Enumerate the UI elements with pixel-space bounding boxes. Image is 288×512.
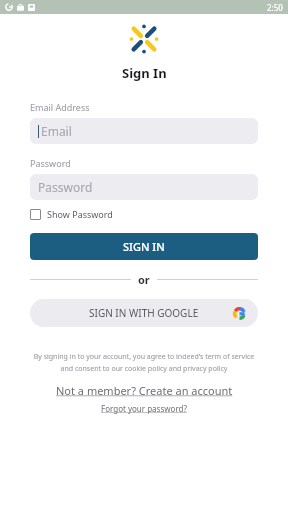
button[interactable]: Forgot your password?: [101, 403, 187, 414]
staticText: 2:50: [267, 2, 283, 13]
staticText: SIGN IN: [123, 239, 165, 254]
button[interactable]: Not a member? Create an account: [56, 383, 233, 398]
staticText: Sign In: [122, 64, 167, 82]
staticText: Email: [41, 123, 72, 139]
staticText: or: [138, 272, 150, 287]
button[interactable]: Show Password: [30, 206, 113, 222]
staticText: SIGN IN WITH GOOGLE: [89, 306, 199, 320]
staticText: Email Address: [30, 101, 90, 113]
button[interactable]: Email: [30, 118, 258, 144]
button[interactable]: SIGN IN WITH GOOGLE: [30, 299, 258, 327]
button[interactable]: SIGN IN: [30, 233, 258, 260]
staticText: Password: [38, 179, 93, 195]
button[interactable]: Password: [30, 174, 258, 200]
staticText: Show Password: [47, 208, 113, 220]
staticText: By signing in to your account, you agree…: [30, 352, 258, 373]
button[interactable]: By signing in to your account, you agree…: [30, 352, 258, 373]
staticText: Password: [30, 157, 71, 169]
